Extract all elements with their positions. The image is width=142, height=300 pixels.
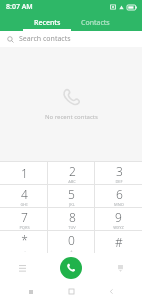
staticText: # [115, 234, 123, 250]
button[interactable]: 3 [95, 162, 142, 184]
staticText: MNO [114, 202, 124, 207]
staticText: JKL [69, 202, 75, 207]
staticText: . [24, 248, 26, 253]
staticText: Search contacts [19, 34, 71, 44]
button[interactable]: 2 [48, 162, 95, 184]
button[interactable]: Recent apps [22, 283, 40, 300]
staticText: No recent contacts [45, 113, 98, 121]
staticText: 4 [21, 186, 28, 202]
button[interactable]: 5 [48, 185, 95, 207]
staticText: Contacts [81, 18, 110, 28]
staticText: 1 [21, 165, 28, 181]
button[interactable]: 8 [48, 208, 95, 230]
button[interactable]: Recents [23, 14, 71, 31]
staticText: ABC [68, 179, 76, 184]
staticText: * [21, 232, 28, 248]
button[interactable]: Call log [14, 260, 30, 276]
staticText: 8:07 AM [6, 2, 33, 12]
staticText: 2 [69, 163, 76, 179]
staticText: 7 [21, 209, 28, 225]
button[interactable]: 4 [0, 185, 48, 207]
staticText: PQRS [19, 225, 30, 230]
staticText: Recents [34, 18, 61, 28]
button[interactable]: 9 [95, 208, 142, 230]
staticText: 3 [116, 163, 123, 179]
button[interactable]: 1 [0, 162, 48, 184]
staticText: + [70, 248, 73, 253]
staticText: 6 [116, 186, 123, 202]
staticText: DEF [115, 179, 123, 184]
staticText: TUV [68, 225, 76, 230]
staticText: GHI [20, 202, 28, 207]
button[interactable]: 7 [0, 208, 48, 230]
staticText: 5 [68, 186, 75, 202]
button[interactable]: Call [60, 257, 82, 279]
staticText: WXYZ [113, 225, 124, 230]
button[interactable]: Contacts [71, 14, 119, 31]
staticText: 9 [115, 209, 122, 225]
staticText: 8 [69, 209, 76, 225]
button[interactable]: Back [102, 283, 120, 300]
button[interactable]: # [95, 231, 142, 253]
button[interactable]: Home [62, 283, 80, 300]
button[interactable]: * [0, 231, 48, 253]
button[interactable]: 0 [48, 231, 95, 253]
staticText: 0 [68, 232, 75, 248]
button[interactable]: Hide keypad [112, 260, 128, 276]
button[interactable]: 6 [95, 185, 142, 207]
button[interactable]: Search contacts [0, 31, 142, 47]
